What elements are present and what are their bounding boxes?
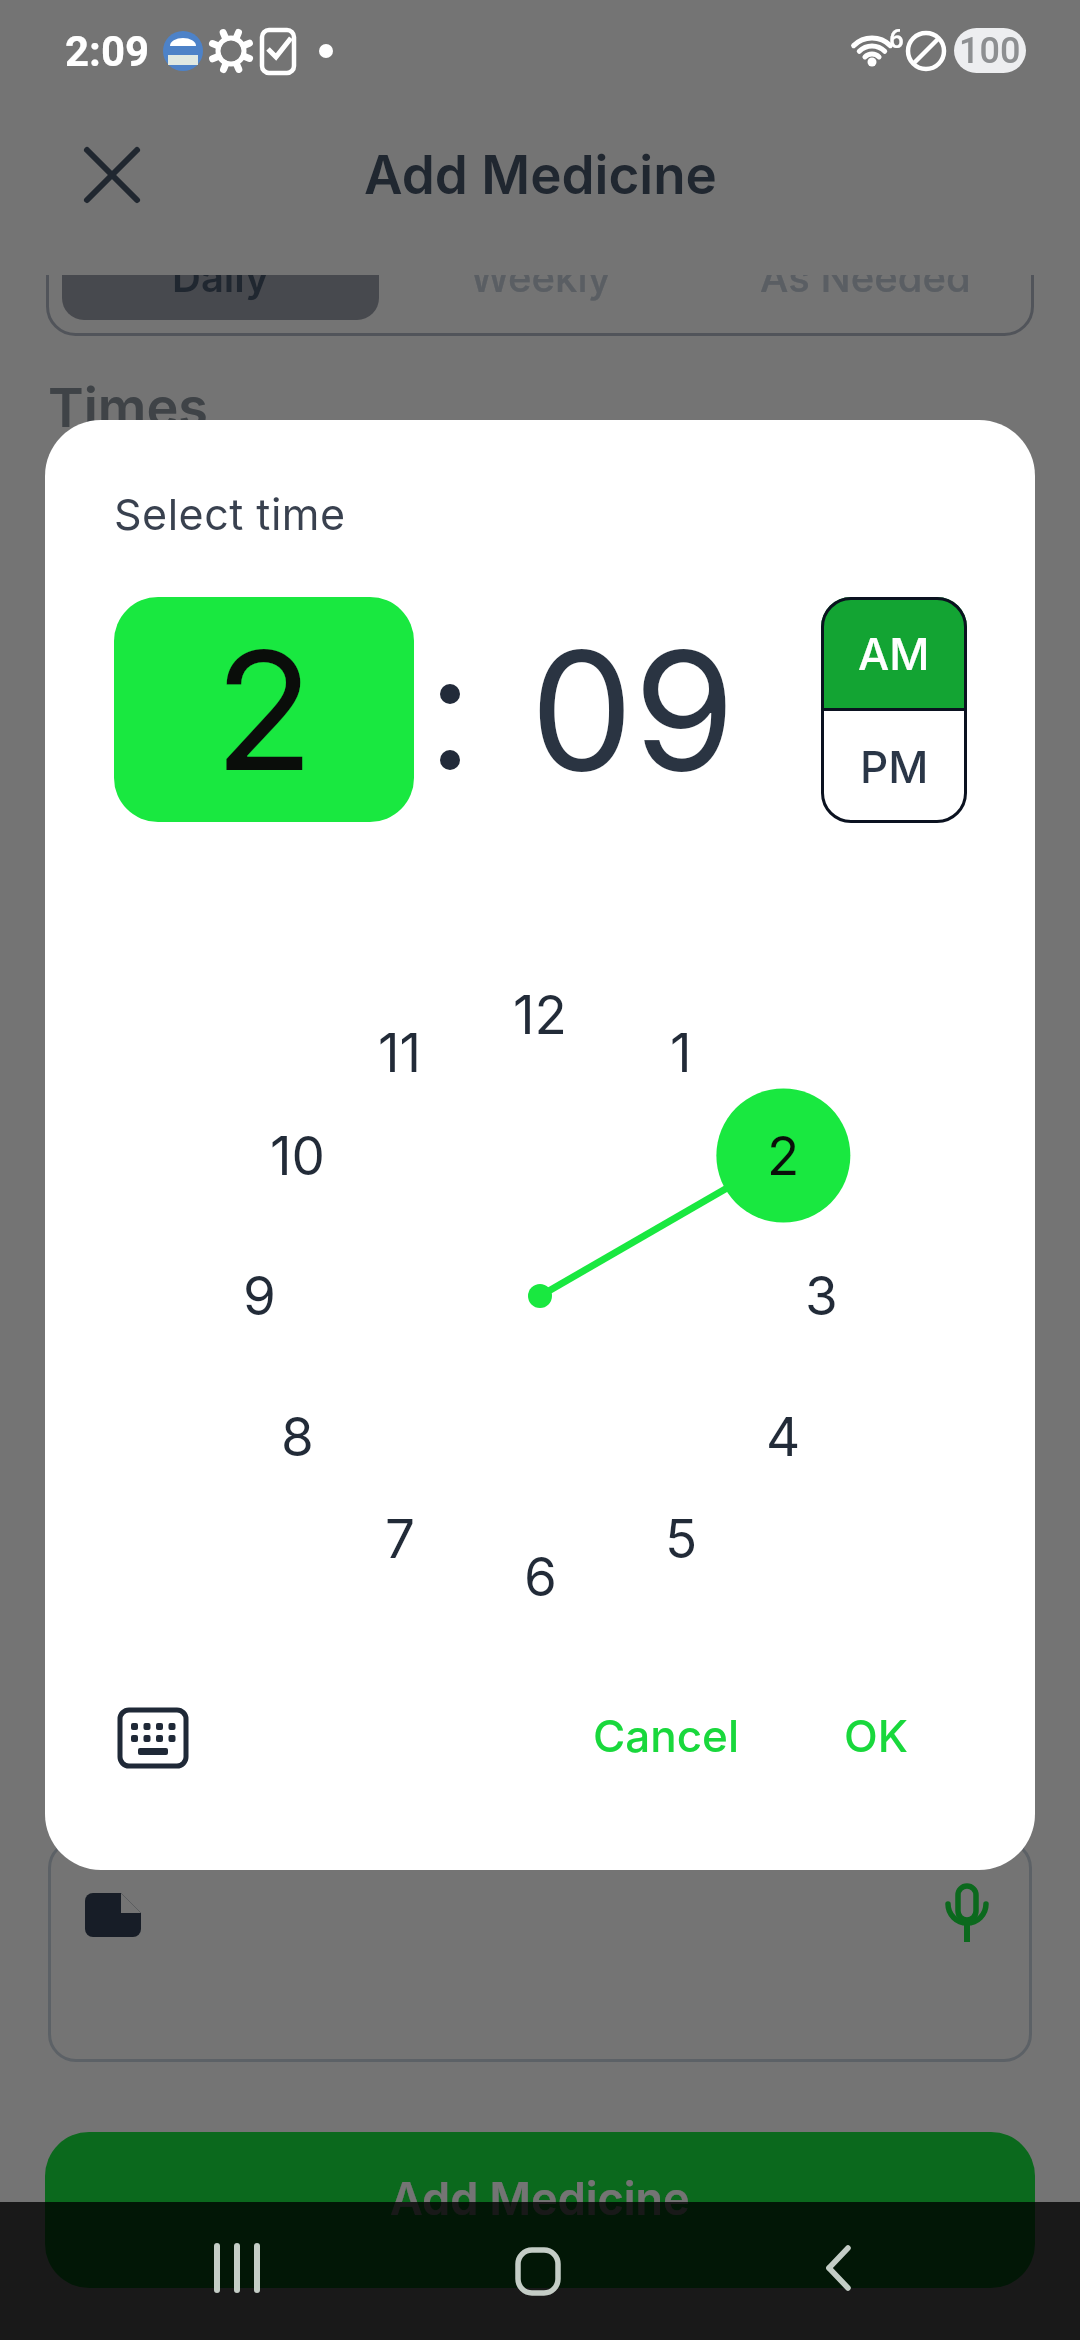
button[interactable]: 9 (199, 1236, 319, 1356)
staticText: 7 (385, 1507, 415, 1571)
staticText: As Needed (760, 275, 971, 301)
button[interactable]: 7 (340, 1479, 460, 1599)
staticText: 1 (670, 1021, 692, 1085)
staticText: 4 (766, 1405, 801, 1469)
button[interactable]: Weekly (380, 275, 700, 337)
staticText: Cancel (593, 1709, 740, 1762)
staticText: PM (860, 740, 929, 793)
staticText: AM (858, 627, 930, 680)
button[interactable]: 8 (237, 1377, 357, 1497)
button[interactable]: 2 (723, 1096, 843, 1216)
staticText: 6 (889, 24, 904, 52)
button[interactable]: 6 (480, 1517, 600, 1637)
staticText: OK (844, 1709, 908, 1762)
staticText: Times (48, 375, 208, 435)
button[interactable] (48, 1840, 1032, 2062)
button[interactable]: Daily (62, 275, 379, 337)
button[interactable] (490, 2222, 590, 2322)
staticText: 9 (243, 1264, 276, 1328)
staticText: 3 (805, 1264, 838, 1328)
button[interactable]: 4 (723, 1377, 843, 1497)
button[interactable] (45, 2132, 1035, 2288)
button[interactable]: 11 (340, 993, 460, 1113)
button[interactable] (566, 1704, 766, 1766)
button[interactable] (187, 2222, 287, 2322)
button[interactable] (821, 710, 967, 823)
button[interactable] (790, 2222, 890, 2322)
staticText: 5 (665, 1507, 698, 1571)
staticText: Weekly (470, 275, 611, 301)
staticText: Add Medicine (364, 143, 717, 207)
button[interactable]: As Needed (700, 275, 1030, 337)
staticText: 2:09 (65, 27, 150, 76)
button[interactable] (120, 1710, 186, 1766)
staticText: 10 (270, 1124, 325, 1188)
staticText: Add Medicine (390, 2171, 690, 2225)
button[interactable] (114, 597, 414, 822)
button[interactable]: 12 (480, 955, 600, 1075)
staticText: 09 (530, 611, 736, 809)
button[interactable]: 5 (621, 1479, 741, 1599)
button[interactable] (806, 1704, 946, 1766)
staticText: 6 (524, 1545, 557, 1609)
staticText: 11 (378, 1021, 422, 1085)
staticText: 2 (767, 1124, 800, 1188)
button[interactable]: 1 (621, 993, 741, 1113)
button[interactable] (76, 139, 148, 211)
button[interactable]: 3 (761, 1236, 881, 1356)
staticText: Select time (114, 488, 346, 540)
staticText: 8 (281, 1405, 314, 1469)
staticText: 2 (214, 611, 315, 809)
button[interactable] (821, 597, 967, 710)
staticText: 100 (959, 30, 1021, 72)
staticText: Daily (172, 275, 269, 301)
button[interactable]: 10 (237, 1096, 357, 1216)
staticText: 12 (513, 983, 567, 1047)
